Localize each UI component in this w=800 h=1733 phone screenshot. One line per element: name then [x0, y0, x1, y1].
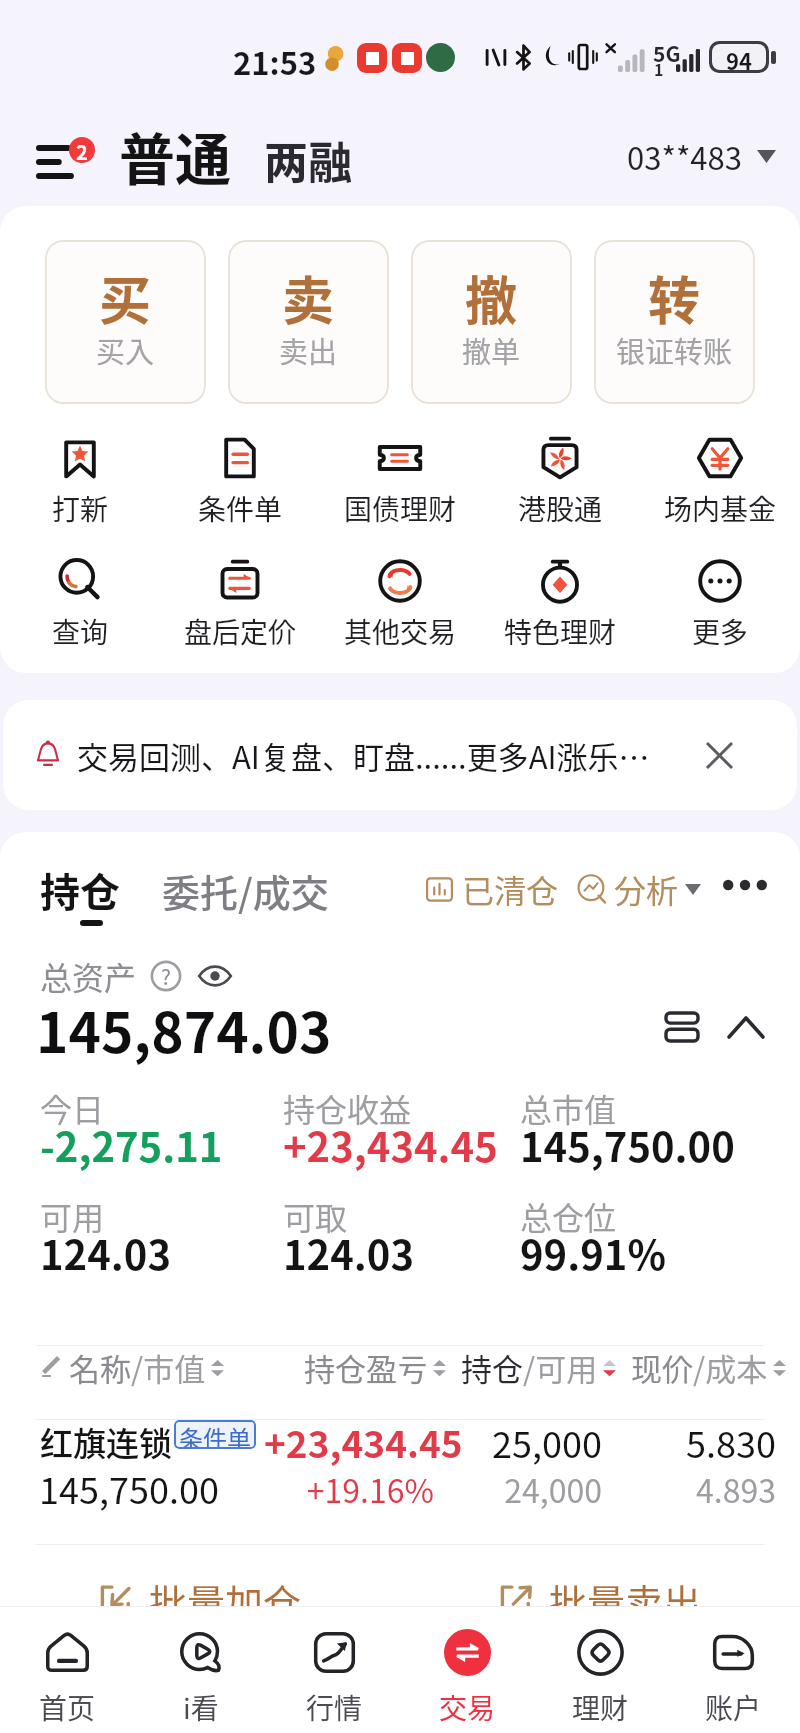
staticText: 5.830 [376, 1416, 776, 1468]
button[interactable]: 更多 [640, 558, 800, 652]
button[interactable]: 打新 [0, 435, 160, 529]
button[interactable]: 现价 [631, 1345, 786, 1390]
staticText: 5G [653, 38, 681, 68]
staticText: +19.16% [34, 1466, 434, 1512]
button[interactable]: 红旗连锁 [0, 1409, 800, 1521]
button[interactable]: Toggle balance visibility [197, 963, 233, 989]
staticText: 委托/成交 [162, 863, 329, 918]
button[interactable]: 首页 [0, 1607, 134, 1733]
staticText: /成本 [693, 1345, 768, 1390]
button[interactable]: 买 [45, 240, 206, 404]
staticText: 24,000 [202, 1466, 602, 1512]
staticText: 港股通 [518, 488, 603, 529]
staticText: 账户 [705, 1687, 762, 1728]
button[interactable]: 委托/成交 [162, 863, 329, 918]
staticText: /可用 [523, 1345, 598, 1390]
staticText: 持仓 [461, 1345, 523, 1390]
staticText: 场内基金 [664, 488, 777, 529]
staticText: 其他交易 [344, 611, 457, 652]
staticText: 可用 [40, 1193, 105, 1239]
button[interactable]: 理财 [534, 1607, 667, 1733]
button[interactable]: Help [151, 961, 181, 991]
button[interactable]: i看 [134, 1607, 268, 1733]
staticText: 查询 [52, 611, 109, 652]
staticText: 已清仓 [462, 866, 559, 912]
button[interactable]: 特色理财 [480, 558, 640, 652]
staticText: 交易回测、AI复盘、盯盘......更多AI涨乐… [77, 733, 650, 778]
staticText: 买入 [96, 329, 155, 371]
button[interactable]: 普通 [119, 115, 231, 196]
staticText: 持仓收益 [283, 1085, 412, 1131]
button[interactable]: 行情 [268, 1607, 401, 1733]
staticText: 撤单 [462, 329, 521, 371]
button[interactable]: 卖 [228, 240, 389, 404]
staticText: 94 [726, 44, 752, 70]
button[interactable]: 查询 [0, 558, 160, 652]
button[interactable]: More options [716, 857, 774, 913]
button[interactable]: 交易 [401, 1607, 534, 1733]
staticText: 特色理财 [504, 611, 617, 652]
button[interactable]: Collapse [722, 1003, 770, 1051]
button[interactable]: 持仓 [461, 1345, 616, 1390]
staticText: 4.893 [376, 1466, 776, 1512]
staticText: 理财 [572, 1687, 629, 1728]
staticText: 总市值 [520, 1085, 617, 1131]
button[interactable]: 名称 [69, 1345, 224, 1390]
staticText: 145,750.00 [520, 1116, 735, 1174]
staticText: 总仓位 [520, 1193, 617, 1239]
button[interactable]: Close [693, 729, 745, 781]
staticText: 分析 [614, 866, 679, 912]
staticText: 条件单 [179, 1420, 251, 1449]
button[interactable]: 转 [594, 240, 755, 404]
staticText: 普通 [119, 115, 231, 196]
button[interactable]: 港股通 [480, 435, 640, 529]
staticText: 交易 [439, 1687, 496, 1728]
staticText: 银证转账 [616, 329, 733, 371]
button[interactable]: 账户 [667, 1607, 800, 1733]
staticText: 批量加仓 [149, 1573, 302, 1628]
staticText: 买 [99, 260, 152, 335]
button[interactable]: 国债理财 [320, 435, 480, 529]
staticText: 03**483 [627, 134, 742, 179]
button[interactable]: 条件单 [160, 435, 320, 529]
staticText: 国债理财 [344, 488, 457, 529]
staticText: 打新 [52, 488, 109, 529]
button[interactable]: 撤 [411, 240, 572, 404]
button[interactable]: 两融 [264, 128, 352, 192]
staticText: i看 [183, 1687, 219, 1728]
staticText: 卖出 [279, 329, 338, 371]
button[interactable]: 场内基金 [640, 435, 800, 529]
staticText: 可取 [283, 1193, 348, 1239]
button[interactable]: 03**483 [627, 134, 776, 179]
button[interactable]: Menu [28, 124, 98, 192]
staticText: 2 [76, 137, 88, 163]
staticText: /市值 [131, 1345, 206, 1390]
button[interactable]: 盘后定价 [160, 558, 320, 652]
button[interactable]: 持仓 [40, 861, 120, 926]
staticText: +23,434.45 [264, 1415, 463, 1469]
button[interactable]: 持仓盈亏 [304, 1345, 446, 1390]
staticText: 名称 [69, 1345, 131, 1390]
staticText: ? [161, 961, 171, 991]
staticText: 124.03 [283, 1224, 414, 1282]
button[interactable]: Switch layout [658, 1003, 706, 1051]
staticText: 现价 [631, 1345, 693, 1390]
staticText: 红旗连锁 [40, 1418, 172, 1466]
button[interactable]: 批量卖出 [400, 1564, 800, 1632]
staticText: 145,874.03 [36, 989, 332, 1069]
staticText: 条件单 [198, 488, 283, 529]
button[interactable]: 分析 [577, 866, 701, 912]
staticText: 盘后定价 [184, 611, 297, 652]
staticText: 持仓盈亏 [304, 1345, 428, 1390]
staticText: -2,275.11 [40, 1116, 223, 1174]
staticText: 124.03 [40, 1224, 171, 1282]
staticText: 撤 [465, 260, 518, 335]
staticText: 99.91% [520, 1224, 666, 1282]
button[interactable]: 其他交易 [320, 558, 480, 652]
staticText: 批量卖出 [549, 1573, 702, 1628]
button[interactable]: 交易回测、AI复盘、盯盘......更多AI涨乐… [3, 700, 797, 810]
button[interactable]: 批量加仓 [0, 1564, 400, 1632]
staticText: 1 [654, 57, 664, 80]
button[interactable]: 已清仓 [424, 866, 559, 912]
staticText: 卖 [282, 260, 335, 335]
